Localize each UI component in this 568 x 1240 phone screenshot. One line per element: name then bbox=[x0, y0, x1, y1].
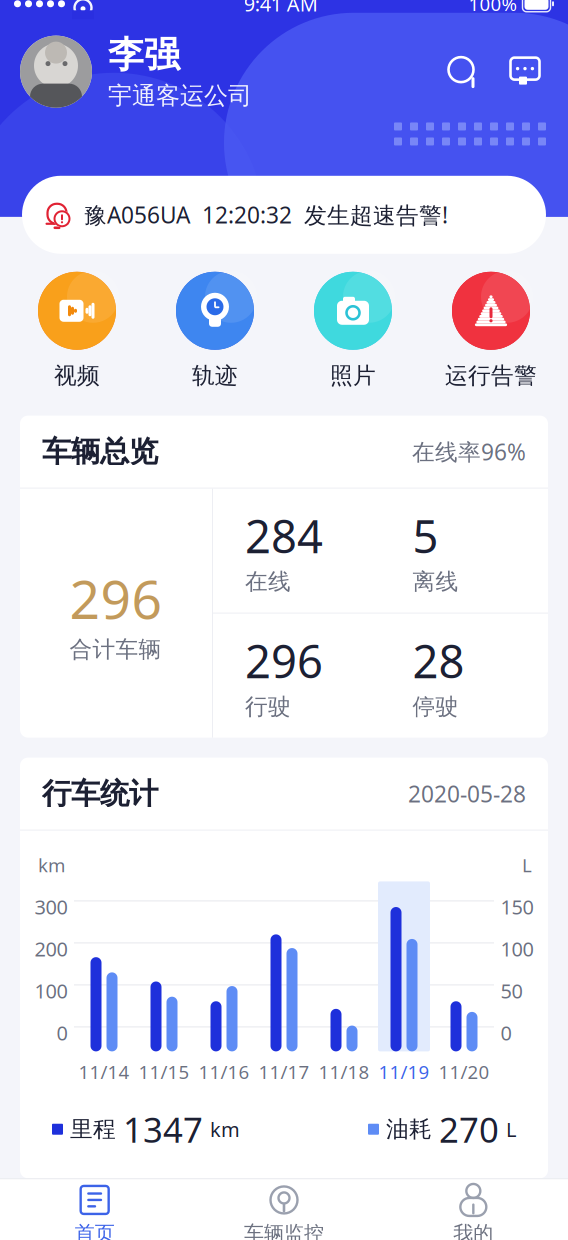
staticText: km bbox=[210, 1116, 240, 1142]
button[interactable]: 车辆监控 bbox=[189, 1177, 379, 1240]
button[interactable]: 照片 bbox=[314, 272, 392, 390]
staticText: 0 bbox=[500, 1019, 511, 1046]
staticText: 100 bbox=[500, 935, 533, 962]
button[interactable]: 搜索 bbox=[440, 49, 486, 95]
staticText: 150 bbox=[500, 893, 533, 920]
staticText: 300 bbox=[34, 893, 67, 920]
staticText: 284 bbox=[245, 506, 323, 566]
staticText: 100% bbox=[468, 0, 517, 16]
staticText: 轨迹 bbox=[192, 362, 238, 390]
staticText: 行驶 bbox=[245, 693, 291, 721]
staticText: 11/14 bbox=[78, 1059, 129, 1084]
button[interactable]: 消息 bbox=[502, 49, 548, 95]
staticText: 11/15 bbox=[138, 1059, 189, 1084]
staticText: L bbox=[506, 1116, 516, 1142]
staticText: 296 bbox=[245, 631, 323, 691]
button[interactable]: 运行告警 bbox=[445, 272, 537, 390]
staticText: 9:41 AM bbox=[244, 0, 318, 17]
staticText: 车辆总览 bbox=[42, 434, 158, 470]
staticText: 照片 bbox=[330, 362, 376, 390]
staticText: 首页 bbox=[75, 1221, 115, 1240]
staticText: 11/19 bbox=[378, 1059, 429, 1084]
staticText: 我的 bbox=[453, 1221, 493, 1240]
staticText: 车辆监控 bbox=[244, 1221, 324, 1240]
staticText: 停驶 bbox=[412, 693, 458, 721]
staticText: 在线率96% bbox=[412, 437, 526, 467]
staticText: 0 bbox=[56, 1019, 67, 1046]
staticText: 豫A056UA 12:20:32 发生超速告警! bbox=[84, 200, 448, 230]
staticText: 100 bbox=[34, 977, 67, 1004]
staticText: 28 bbox=[412, 631, 464, 691]
button[interactable]: 首页 bbox=[0, 1177, 189, 1240]
staticText: 270 bbox=[439, 1106, 499, 1152]
staticText: 在线 bbox=[245, 568, 291, 596]
staticText: 行车统计 bbox=[42, 776, 158, 812]
staticText: 油耗 bbox=[386, 1115, 432, 1143]
staticText: 296 bbox=[69, 563, 162, 634]
staticText: 合计车辆 bbox=[69, 636, 161, 663]
staticText: 11/18 bbox=[318, 1059, 369, 1084]
staticText: 5 bbox=[412, 506, 438, 566]
staticText: 200 bbox=[34, 935, 67, 962]
staticText: L bbox=[522, 853, 532, 877]
staticText: 离线 bbox=[412, 568, 458, 596]
staticText: 李强 bbox=[108, 33, 180, 77]
staticText: 11/20 bbox=[438, 1059, 489, 1084]
staticText: 11/16 bbox=[198, 1059, 249, 1084]
button[interactable]: 我的 bbox=[379, 1177, 568, 1240]
staticText: 50 bbox=[500, 977, 522, 1004]
staticText: 11/17 bbox=[258, 1059, 309, 1084]
staticText: 运行告警 bbox=[445, 362, 537, 390]
staticText: 里程 bbox=[70, 1115, 116, 1143]
button[interactable]: 豫A056UA 12:20:32 发生超速告警! bbox=[22, 176, 546, 254]
button[interactable]: 视频 bbox=[38, 272, 116, 390]
staticText: km bbox=[38, 853, 65, 877]
staticText: 2020-05-28 bbox=[408, 779, 526, 809]
staticText: 视频 bbox=[54, 362, 100, 390]
staticText: 1347 bbox=[123, 1106, 203, 1152]
staticText: 宇通客运公司 bbox=[108, 81, 252, 110]
button[interactable]: 轨迹 bbox=[176, 272, 254, 390]
